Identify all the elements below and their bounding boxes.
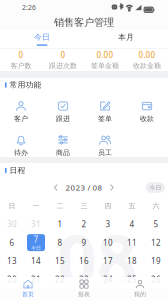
staticText: 待办 — [14, 148, 28, 157]
button[interactable]: 今日 — [146, 182, 165, 193]
button[interactable]: 26 — [144, 270, 168, 289]
button[interactable]: 商品 — [42, 135, 84, 156]
button[interactable]: 17 — [96, 252, 120, 270]
button[interactable]: 2 — [72, 215, 96, 233]
button[interactable]: 13 — [0, 252, 24, 270]
staticText: 21 — [31, 274, 41, 285]
button[interactable]: 4 — [120, 215, 144, 233]
button[interactable]: 19 — [144, 252, 168, 270]
staticText: 4 — [129, 219, 134, 230]
staticText: 跟进次数 — [49, 61, 77, 70]
button[interactable]: 今日 — [0, 30, 84, 48]
button[interactable]: 31 — [24, 215, 48, 233]
staticText: 30 — [7, 219, 17, 230]
staticText: 日 — [8, 202, 15, 210]
staticText: 一 — [32, 202, 39, 210]
staticText: 08 — [57, 212, 137, 300]
staticText: 今日 — [149, 184, 161, 191]
staticText: 本月 — [118, 32, 134, 42]
button[interactable]: 12 — [144, 233, 168, 252]
staticText: 12 — [151, 237, 161, 248]
staticText: 今日 — [31, 245, 41, 251]
button[interactable]: 7 — [24, 233, 48, 252]
staticText: 客户数 — [10, 61, 31, 70]
button[interactable]: 9 — [72, 233, 96, 252]
staticText: 报表 — [78, 290, 90, 298]
button[interactable]: 20 — [0, 270, 24, 289]
button[interactable]: 签单 — [84, 101, 126, 122]
button[interactable]: 22 — [48, 270, 72, 289]
staticText: 0 — [60, 49, 65, 60]
button[interactable]: 21 — [24, 270, 48, 289]
button[interactable]: 24 — [96, 270, 120, 289]
staticText: 五 — [128, 202, 135, 210]
staticText: 跟进 — [56, 114, 70, 123]
button[interactable]: 3 — [96, 215, 120, 233]
staticText: 我的 — [134, 290, 146, 298]
staticText: 签单金额 — [91, 61, 119, 70]
staticText: 9 — [81, 237, 86, 248]
button[interactable]: 客户 — [0, 101, 42, 122]
button[interactable]: 待办 — [0, 135, 42, 156]
staticText: 24 — [103, 274, 113, 285]
button[interactable]: 下个月 — [107, 183, 116, 192]
button[interactable]: 30 — [0, 215, 24, 233]
button[interactable]: 14 — [24, 252, 48, 270]
button[interactable]: 11 — [120, 233, 144, 252]
button[interactable]: 1 — [48, 215, 72, 233]
staticText: 销售客户管理 — [54, 16, 114, 29]
staticText: 2 — [81, 219, 86, 230]
staticText: 六 — [152, 202, 159, 210]
staticText: 7 — [33, 234, 38, 245]
staticText: 11 — [127, 237, 137, 248]
button[interactable]: 本月 — [84, 30, 168, 48]
staticText: 19 — [151, 256, 161, 266]
button[interactable]: 23 — [72, 270, 96, 289]
staticText: 日程 — [10, 165, 26, 175]
staticText: 22 — [55, 274, 65, 285]
staticText: 签单 — [98, 114, 112, 123]
staticText: 今日 — [34, 32, 50, 42]
staticText: 10 — [103, 237, 113, 248]
button[interactable]: 首页 — [0, 277, 56, 300]
staticText: 17 — [103, 256, 113, 266]
staticText: 二 — [56, 202, 63, 210]
staticText: 31 — [31, 219, 41, 230]
button[interactable]: 跟进 — [42, 101, 84, 122]
staticText: 16 — [79, 256, 89, 266]
staticText: 18 — [127, 256, 137, 266]
staticText: 商品 — [56, 148, 70, 157]
button[interactable]: 6 — [0, 233, 24, 252]
staticText: 8 — [57, 237, 62, 248]
button[interactable]: 8 — [48, 233, 72, 252]
button[interactable]: 我的 — [112, 277, 168, 300]
staticText: 25 — [127, 274, 137, 285]
button[interactable]: 员工 — [84, 135, 126, 156]
staticText: 13 — [7, 256, 17, 266]
staticText: 5 — [153, 219, 158, 230]
staticText: 14 — [31, 256, 41, 266]
staticText: 常用功能 — [10, 80, 42, 90]
staticText: 收款金额 — [133, 61, 161, 70]
staticText: 首页 — [22, 290, 34, 298]
button[interactable]: 16 — [72, 252, 96, 270]
button[interactable]: 收款 — [126, 101, 168, 122]
button[interactable]: 报表 — [56, 277, 112, 300]
staticText: 26 — [151, 274, 161, 285]
button[interactable]: 上个月 — [51, 183, 60, 192]
staticText: 1 — [57, 219, 62, 230]
button[interactable]: 15 — [48, 252, 72, 270]
button[interactable]: 18 — [120, 252, 144, 270]
staticText: 3 — [105, 219, 110, 230]
staticText: 0 — [18, 49, 23, 60]
staticText: 2023 / 08 — [65, 182, 102, 193]
button[interactable]: 25 — [120, 270, 144, 289]
button[interactable]: 5 — [144, 215, 168, 233]
staticText: 15 — [55, 256, 65, 266]
staticText: 23 — [79, 274, 89, 285]
staticText: 收款 — [140, 114, 154, 123]
staticText: 三 — [80, 202, 87, 210]
button[interactable]: 10 — [96, 233, 120, 252]
staticText: 2:26 — [22, 3, 36, 12]
staticText: 20 — [7, 274, 17, 285]
